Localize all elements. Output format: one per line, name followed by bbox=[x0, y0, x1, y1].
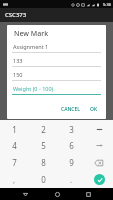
staticText: 133 bbox=[13, 57, 23, 64]
button[interactable]: 5 bbox=[29, 137, 57, 154]
staticText: 1 bbox=[12, 124, 17, 135]
button[interactable]: Recent apps bbox=[82, 188, 94, 200]
staticText: 5 bbox=[41, 140, 46, 151]
button[interactable]: 8 bbox=[29, 154, 57, 171]
button[interactable]: OK bbox=[87, 104, 101, 115]
staticText: Assignment 1 bbox=[13, 43, 49, 50]
button[interactable]: Backspace bbox=[85, 154, 113, 171]
button[interactable]: 6 bbox=[57, 137, 85, 154]
staticText: 0 bbox=[41, 174, 46, 185]
staticText: CANCEL bbox=[61, 106, 80, 113]
staticText: New Mark bbox=[14, 29, 49, 39]
button[interactable]: Assignment 1 bbox=[12, 43, 101, 57]
button[interactable]: Weight (0 - 100) bbox=[12, 85, 101, 99]
button[interactable]: 2 bbox=[29, 121, 57, 137]
staticText: 7 bbox=[12, 157, 17, 168]
button[interactable]: 4 bbox=[0, 137, 29, 154]
button[interactable]: 1 bbox=[0, 121, 29, 137]
staticText: Weight (0 - 100) bbox=[13, 85, 54, 92]
button[interactable]: 3 bbox=[57, 121, 85, 137]
staticText: 9 bbox=[69, 157, 74, 168]
button[interactable]: Next field bbox=[85, 137, 113, 154]
staticText: , bbox=[13, 174, 16, 185]
staticText: 8 bbox=[41, 157, 46, 168]
staticText: CSC373 bbox=[5, 11, 27, 19]
button[interactable]: Done bbox=[85, 171, 113, 188]
button[interactable]: 7 bbox=[0, 154, 29, 171]
button[interactable]: Comma bbox=[0, 171, 29, 188]
staticText: 4 bbox=[12, 140, 17, 151]
staticText: 150 bbox=[13, 71, 23, 78]
staticText: 3 bbox=[69, 124, 74, 135]
button[interactable]: 150 bbox=[12, 71, 101, 85]
staticText: . bbox=[70, 174, 73, 185]
button[interactable]: Back bbox=[19, 188, 31, 200]
button[interactable]: Home bbox=[51, 188, 63, 200]
staticText: 2 bbox=[41, 124, 46, 135]
button[interactable]: 133 bbox=[12, 57, 101, 71]
button[interactable]: 9 bbox=[57, 154, 85, 171]
staticText: 5:36 bbox=[103, 2, 111, 7]
button[interactable]: CANCEL bbox=[58, 104, 83, 115]
button[interactable]: Minus bbox=[85, 121, 113, 137]
staticText: OK bbox=[90, 106, 98, 113]
button[interactable]: 0 bbox=[29, 171, 57, 188]
staticText: 6 bbox=[69, 140, 74, 151]
